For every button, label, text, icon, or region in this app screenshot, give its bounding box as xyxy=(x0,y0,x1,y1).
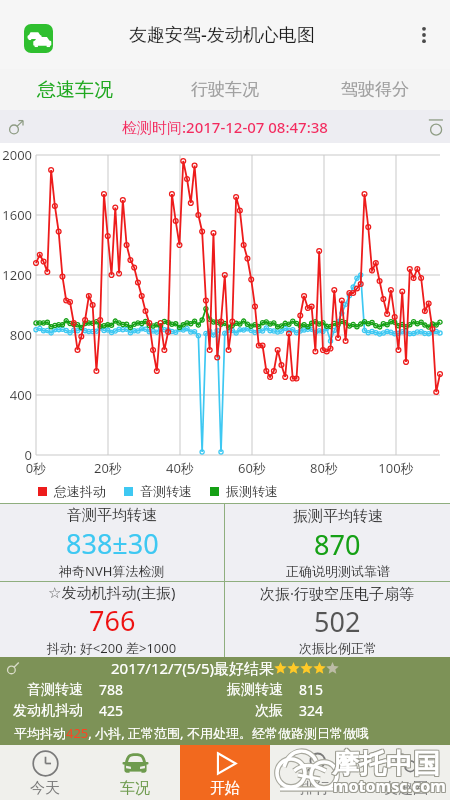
staticText: 2017/12/7(5/5)最好结果 xyxy=(111,658,274,678)
staticText: 神奇NVH算法检测 xyxy=(59,562,165,580)
staticText: 振测平均转速 xyxy=(293,507,383,526)
staticText: 摩托中国 xyxy=(331,748,439,782)
button[interactable]: 驾驶得分 xyxy=(300,69,450,110)
button[interactable]: 音测平均转速 xyxy=(0,504,224,581)
button[interactable]: Today xyxy=(0,745,90,800)
staticText: 发动机抖动 xyxy=(8,702,83,720)
staticText: 838±30 xyxy=(66,525,159,562)
staticText: 怠速车况 xyxy=(37,78,113,102)
staticText: 870 xyxy=(314,526,361,563)
staticText: 100秒 xyxy=(374,459,418,477)
staticText: motomsc.com xyxy=(333,775,446,797)
staticText: motomsc.com xyxy=(332,776,445,798)
staticText: 摩托中国 xyxy=(333,746,441,780)
staticText: 抖动: 好<200 差>1000 xyxy=(47,639,177,657)
other: Gender xyxy=(6,117,26,137)
staticText: motomsc.com xyxy=(334,775,447,797)
staticText: 平均抖动425, 小抖, 正常范围, 不用处理。经常做路测日常做哦 xyxy=(14,724,369,742)
other: Tap xyxy=(424,116,446,138)
staticText: 766 xyxy=(89,602,136,639)
staticText: motomsc.com xyxy=(333,776,446,798)
button[interactable]: More options xyxy=(402,13,446,57)
button[interactable]: 振测平均转速 xyxy=(225,504,450,581)
staticText: 驾驶得分 xyxy=(341,79,409,100)
staticText: 摩托中国 xyxy=(333,747,441,781)
staticText: 振测转速 xyxy=(208,681,283,699)
staticText: 0 xyxy=(0,446,32,464)
staticText: 次振 xyxy=(208,702,283,720)
staticText: motomsc.com xyxy=(332,775,445,797)
staticText: 摩托中国 xyxy=(333,748,441,782)
button[interactable]: ☆发动机抖动(主振) xyxy=(0,582,224,657)
staticText: 400 xyxy=(0,386,32,404)
staticText: 1600 xyxy=(0,206,32,224)
staticText: 音测平均转速 xyxy=(67,506,157,525)
staticText: 次振·行驶空压电子扇等 xyxy=(260,583,415,603)
staticText: motomsc.com xyxy=(332,774,445,796)
staticText: 开始 xyxy=(210,779,240,798)
staticText: 80秒 xyxy=(302,459,346,477)
button[interactable]: Ranking xyxy=(270,745,360,800)
staticText: motomsc.com xyxy=(334,774,447,796)
staticText: 音测转速 xyxy=(140,483,192,499)
button[interactable]: App icon xyxy=(24,24,53,53)
staticText: 车况 xyxy=(120,779,150,798)
staticText: 324 xyxy=(299,701,324,720)
staticText: 正确说明测试靠谱 xyxy=(286,563,390,579)
staticText: 振测转速 xyxy=(226,483,278,499)
staticText: 60秒 xyxy=(230,459,274,477)
staticText: 800 xyxy=(0,326,32,344)
staticText: 摩托中国 xyxy=(332,746,440,780)
staticText: 摩托中国 xyxy=(332,748,440,782)
staticText: 行驶车况 xyxy=(191,79,259,100)
staticText: ☆发动机抖动(主振) xyxy=(48,582,176,602)
staticText: 摩托中国 xyxy=(332,747,440,781)
button[interactable]: Community xyxy=(360,745,450,800)
staticText: motomsc.com xyxy=(334,776,447,798)
staticText: 摩托中国 xyxy=(331,746,439,780)
staticText: 次振比例正常 xyxy=(299,640,377,656)
button[interactable]: Start xyxy=(180,745,270,800)
staticText: 2000 xyxy=(0,146,32,164)
staticText: 40秒 xyxy=(158,459,202,477)
staticText: 815 xyxy=(299,680,324,699)
staticText: 摩托中国 xyxy=(331,747,439,781)
staticText: 今天 xyxy=(30,779,60,798)
staticText: 友趣圈 xyxy=(383,779,428,798)
staticText: 502 xyxy=(314,603,361,640)
staticText: 检测时间:2017-12-07 08:47:38 xyxy=(122,117,328,137)
button[interactable]: 行驶车况 xyxy=(150,69,300,110)
staticText: motomsc.com xyxy=(333,774,446,796)
staticText: 排行 xyxy=(300,779,330,798)
staticText: 20秒 xyxy=(86,459,130,477)
staticText: 0秒 xyxy=(14,459,58,477)
staticText: 友趣安驾-发动机心电图 xyxy=(129,22,315,47)
staticText: 425 xyxy=(99,701,124,720)
button[interactable]: 次振·行驶空压电子扇等 xyxy=(225,582,450,657)
staticText: 788 xyxy=(99,680,124,699)
staticText: 1200 xyxy=(0,266,32,284)
button[interactable]: Vehicle xyxy=(90,745,180,800)
staticText: 音测转速 xyxy=(8,681,83,699)
button[interactable]: 怠速车况 xyxy=(0,69,150,110)
staticText: 怠速抖动 xyxy=(54,483,106,499)
